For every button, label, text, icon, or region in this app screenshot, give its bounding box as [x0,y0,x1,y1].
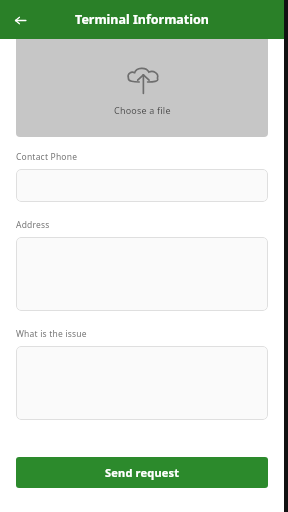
staticText: Address [16,219,50,231]
button[interactable] [16,346,268,420]
staticText: Send request [105,465,180,480]
button[interactable] [16,169,268,202]
staticText: Choose a file [114,104,171,116]
staticText: Contact Phone [16,151,78,163]
button[interactable] [16,237,268,311]
button[interactable]: Send request [16,457,268,488]
staticText: What is the issue [16,328,87,340]
button[interactable]: Choose a file [16,39,268,137]
button[interactable]: Back [6,6,34,34]
staticText: Terminal Information [0,11,284,28]
